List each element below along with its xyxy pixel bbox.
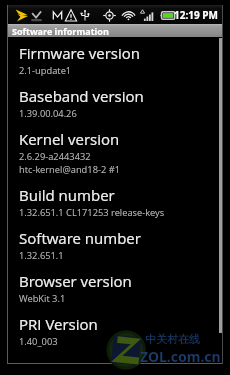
staticText: 1.40_003 xyxy=(19,335,58,348)
staticText: 1.32.651.1 xyxy=(19,249,64,262)
staticText: Baseband version xyxy=(19,86,144,106)
staticText: 2.1-update1 xyxy=(19,64,72,77)
staticText: 1.39.00.04.26 xyxy=(19,107,77,120)
staticText: Software number xyxy=(19,228,141,248)
staticText: WebKit 3.1 xyxy=(19,292,66,305)
button[interactable]: Baseband version xyxy=(8,80,222,123)
button[interactable]: Browser version xyxy=(8,265,222,308)
staticText: 2.6.29-a2443432 xyxy=(19,150,91,163)
staticText: Build number xyxy=(19,185,115,205)
staticText: Kernel version xyxy=(19,129,120,149)
button[interactable]: Firmware version xyxy=(8,37,222,80)
staticText: PRI Version xyxy=(19,314,98,334)
button[interactable]: Build number xyxy=(8,179,222,222)
staticText: Firmware version xyxy=(19,43,141,63)
button[interactable]: Software number xyxy=(8,222,222,265)
staticText: ZOL.com.cn xyxy=(140,347,221,366)
staticText: 中关村在线 xyxy=(145,332,200,346)
staticText: 12:19 PM xyxy=(174,8,218,22)
staticText: Software information xyxy=(12,25,109,37)
staticText: Browser version xyxy=(19,271,132,291)
staticText: htc-kernel@and18-2 #1 xyxy=(19,163,120,176)
staticText: 1.32.651.1 CL171253 release-keys xyxy=(19,206,165,219)
button[interactable]: Kernel version xyxy=(8,123,222,179)
button[interactable]: PRI Version xyxy=(8,308,222,351)
